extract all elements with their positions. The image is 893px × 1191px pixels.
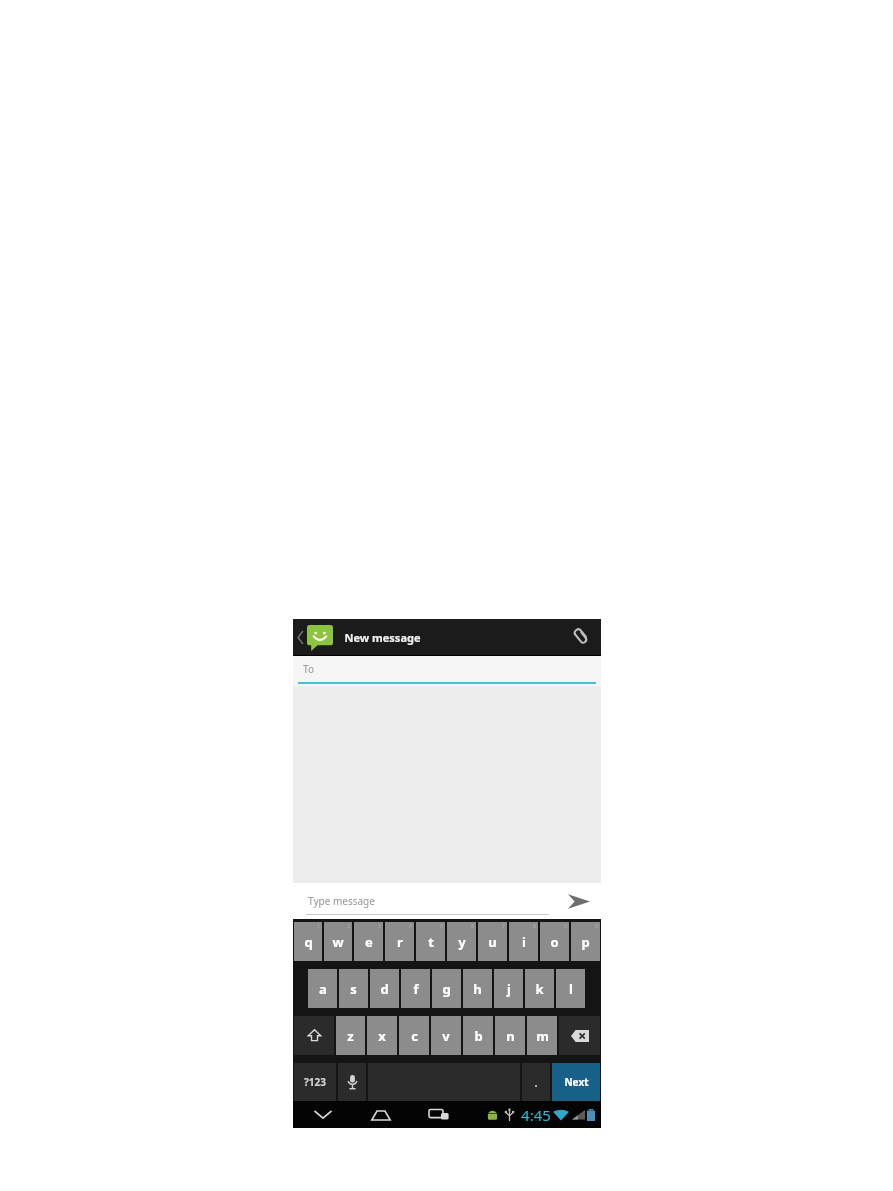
button[interactable]: f: [401, 969, 430, 1008]
button[interactable]: Send: [557, 883, 601, 919]
button[interactable]: Back: [301, 1101, 345, 1128]
button[interactable]: k: [525, 969, 554, 1008]
staticText: r: [397, 933, 403, 951]
staticText: New message: [344, 630, 421, 645]
staticText: Next: [564, 1075, 589, 1089]
button[interactable]: Symbols: [294, 1063, 336, 1101]
button[interactable]: Attach: [561, 619, 601, 656]
staticText: 9: [564, 923, 567, 930]
button[interactable]: z: [336, 1016, 365, 1055]
staticText: n: [506, 1027, 515, 1045]
staticText: 4:45: [521, 1105, 551, 1125]
staticText: 6: [471, 923, 474, 930]
staticText: g: [442, 980, 451, 998]
staticText: 1: [317, 923, 320, 930]
staticText: 4: [409, 923, 412, 930]
button[interactable]: To: [293, 656, 601, 686]
staticText: ?123: [304, 1075, 326, 1089]
staticText: z: [347, 1027, 354, 1045]
staticText: 0: [595, 923, 598, 930]
button[interactable]: Voice input: [338, 1063, 366, 1101]
button[interactable]: n: [495, 1016, 525, 1055]
staticText: To: [303, 662, 314, 676]
staticText: 7: [502, 923, 505, 930]
button[interactable]: Next: [552, 1063, 600, 1101]
button[interactable]: w: [324, 922, 352, 961]
button[interactable]: i: [509, 922, 538, 961]
staticText: d: [380, 980, 389, 998]
button[interactable]: y: [447, 922, 476, 961]
staticText: s: [350, 980, 357, 998]
staticText: l: [569, 980, 573, 998]
button[interactable]: u: [478, 922, 507, 961]
button[interactable]: h: [463, 969, 492, 1008]
button[interactable]: m: [527, 1016, 557, 1055]
staticText: h: [473, 980, 482, 998]
staticText: q: [304, 933, 313, 951]
staticText: 8: [533, 923, 536, 930]
button[interactable]: s: [339, 969, 368, 1008]
staticText: a: [319, 980, 327, 998]
button[interactable]: Type message: [293, 883, 557, 919]
button[interactable]: Delete: [559, 1016, 600, 1055]
button[interactable]: q: [294, 922, 322, 961]
button[interactable]: Shift: [294, 1016, 334, 1055]
button[interactable]: o: [540, 922, 569, 961]
button[interactable]: r: [385, 922, 414, 961]
staticText: Type message: [308, 894, 375, 908]
button[interactable]: t: [416, 922, 445, 961]
staticText: b: [474, 1027, 483, 1045]
staticText: e: [365, 933, 373, 951]
staticText: u: [488, 933, 497, 951]
staticText: j: [507, 980, 511, 998]
button[interactable]: Period: [522, 1063, 550, 1101]
staticText: .: [534, 1075, 538, 1090]
button[interactable]: x: [367, 1016, 397, 1055]
button[interactable]: c: [399, 1016, 429, 1055]
staticText: m: [536, 1027, 549, 1045]
button[interactable]: g: [432, 969, 461, 1008]
button[interactable]: p: [571, 922, 600, 961]
staticText: o: [550, 933, 559, 951]
staticText: p: [581, 933, 590, 951]
staticText: x: [378, 1027, 386, 1045]
staticText: t: [428, 933, 434, 951]
staticText: w: [332, 933, 344, 951]
button[interactable]: a: [308, 969, 337, 1008]
staticText: v: [442, 1027, 450, 1045]
button[interactable]: Navigate up: [293, 619, 337, 656]
staticText: f: [413, 980, 419, 998]
button[interactable]: b: [463, 1016, 493, 1055]
staticText: 5: [440, 923, 443, 930]
button[interactable]: Home: [359, 1101, 403, 1128]
button[interactable]: v: [431, 1016, 461, 1055]
staticText: k: [535, 980, 544, 998]
staticText: 2: [347, 923, 350, 930]
staticText: y: [458, 933, 466, 951]
button[interactable]: l: [556, 969, 585, 1008]
button[interactable]: e: [354, 922, 383, 961]
staticText: c: [411, 1027, 418, 1045]
button[interactable]: Recent apps: [417, 1101, 461, 1128]
staticText: i: [522, 933, 526, 951]
button[interactable]: j: [494, 969, 523, 1008]
button[interactable]: d: [370, 969, 399, 1008]
staticText: 3: [378, 923, 381, 930]
